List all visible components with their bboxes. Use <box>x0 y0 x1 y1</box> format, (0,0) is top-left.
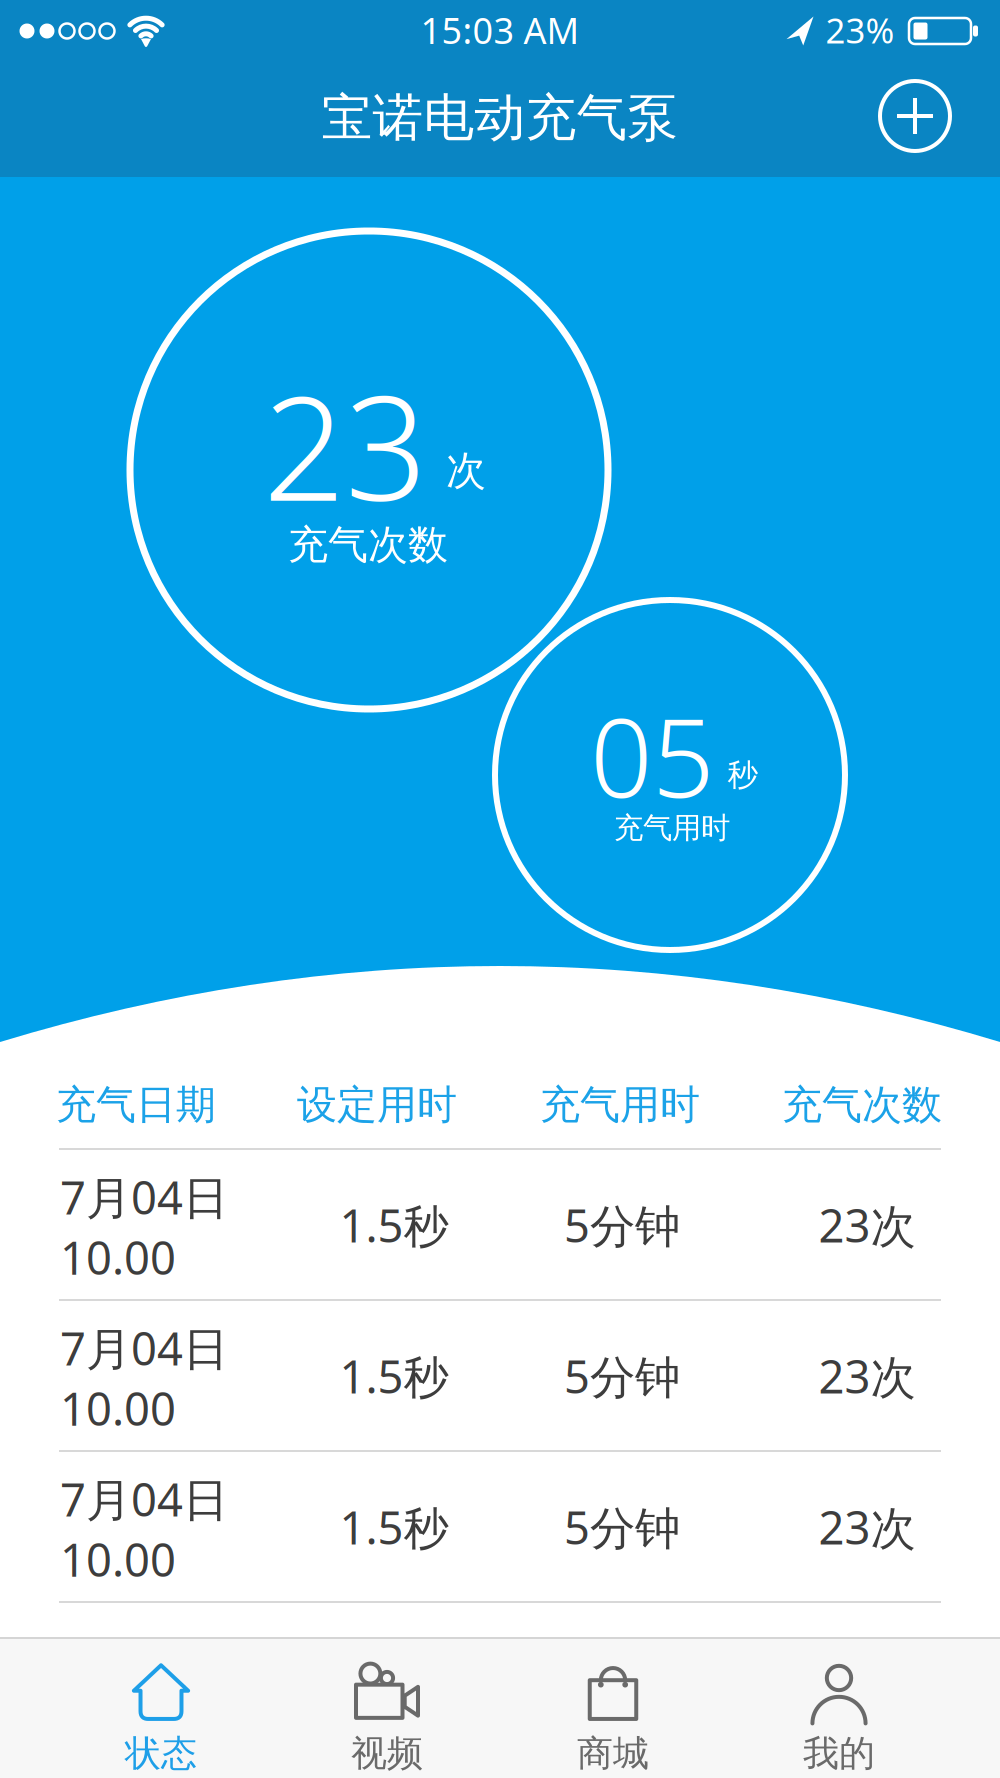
staticText: 5分钟 <box>564 1346 680 1406</box>
staticText: 10.00 <box>60 1529 176 1589</box>
staticText: 23次 <box>818 1346 915 1406</box>
staticText: 充气次数 <box>288 520 448 569</box>
staticText: 1.5秒 <box>339 1497 448 1557</box>
button[interactable]: 添加 <box>875 76 955 156</box>
staticText: 充气用时 <box>614 810 730 846</box>
staticText: 1.5秒 <box>339 1346 448 1406</box>
staticText: 1.5秒 <box>339 1195 448 1255</box>
staticText: 视频 <box>351 1731 423 1776</box>
button[interactable]: 视频 <box>274 1641 500 1775</box>
button[interactable]: 状态 <box>48 1641 274 1775</box>
staticText: 商城 <box>577 1731 649 1776</box>
button[interactable]: 商城 <box>500 1641 726 1775</box>
staticText: 23次 <box>818 1195 915 1255</box>
staticText: 秒 <box>727 756 758 794</box>
staticText: 5分钟 <box>564 1195 680 1255</box>
staticText: 我的 <box>803 1731 875 1776</box>
staticText: 23% <box>825 7 894 53</box>
staticText: 7月04日 <box>60 1167 228 1227</box>
button[interactable]: 我的 <box>726 1641 952 1775</box>
staticText: 23 <box>263 349 427 541</box>
staticText: 10.00 <box>60 1378 176 1438</box>
staticText: 状态 <box>125 1731 197 1776</box>
staticText: 充气用时 <box>540 1080 700 1129</box>
staticText: 05 <box>590 682 714 828</box>
staticText: 宝诺电动充气泵 <box>321 87 678 149</box>
staticText: 设定用时 <box>297 1080 457 1129</box>
staticText: 7月04日 <box>60 1318 228 1378</box>
staticText: 10.00 <box>60 1227 176 1287</box>
staticText: 5分钟 <box>564 1497 680 1557</box>
staticText: 15:03 AM <box>420 6 579 54</box>
staticText: 7月04日 <box>60 1469 228 1529</box>
staticText: 充气次数 <box>782 1080 942 1129</box>
staticText: 充气日期 <box>56 1080 216 1129</box>
staticText: 次 <box>446 446 486 495</box>
staticText: 23次 <box>818 1497 915 1557</box>
